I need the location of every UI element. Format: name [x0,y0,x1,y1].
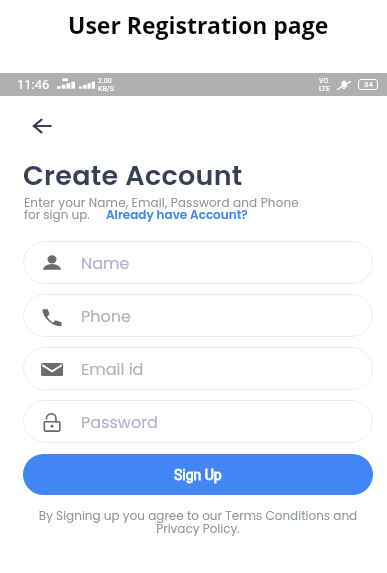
staticText: By Signing up you agree to our Terms Con… [16,507,380,537]
button[interactable]: Already have Account? [106,206,248,223]
staticText: Email id [81,358,144,380]
staticText: Sign Up [174,467,222,483]
staticText: 11:46 [17,77,50,92]
button[interactable]: Password [23,400,373,443]
button[interactable]: Phone [23,294,373,337]
staticText: Create Account [23,157,243,195]
staticText: Enter your Name, Email, Password and Pho… [24,194,299,211]
staticText: VO LTE [319,77,330,92]
staticText: Name [81,252,130,274]
button[interactable]: Name [23,241,373,284]
staticText: User Registration page [68,9,329,40]
button[interactable]: Email id [23,347,373,390]
button[interactable]: Sign Up [23,454,373,495]
staticText: Password [81,411,158,433]
button[interactable]: Back [24,108,60,144]
staticText: 2.00 KB/S [98,77,114,92]
staticText: for sign up. [24,206,90,223]
staticText: Phone [81,305,131,327]
staticText: 34 [364,80,373,89]
